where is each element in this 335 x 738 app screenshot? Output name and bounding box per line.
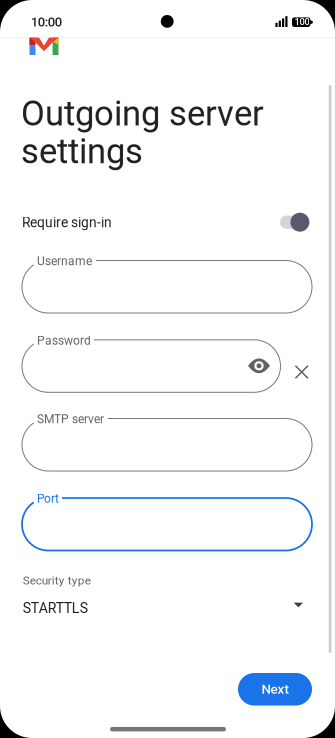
- button[interactable]: Require sign-in: [22, 206, 335, 738]
- button[interactable]: Next: [238, 673, 312, 705]
- staticText: Next: [261, 681, 288, 697]
- button[interactable]: Clear: [289, 359, 335, 738]
- button[interactable]: Security type: [23, 573, 335, 738]
- staticText: Username: [37, 254, 92, 268]
- staticText: SMTP server: [37, 412, 104, 426]
- staticText: STARTTLS: [23, 600, 88, 616]
- staticText: Password: [37, 333, 91, 348]
- staticText: Security type: [23, 573, 91, 587]
- staticText: settings: [21, 131, 143, 172]
- staticText: 10:00: [31, 14, 62, 30]
- staticText: Require sign-in: [22, 214, 112, 230]
- staticText: 100: [294, 16, 309, 27]
- staticText: Outgoing server: [21, 93, 264, 134]
- staticText: Port: [37, 492, 59, 506]
- button[interactable]: Show password: [0, 0, 335, 738]
